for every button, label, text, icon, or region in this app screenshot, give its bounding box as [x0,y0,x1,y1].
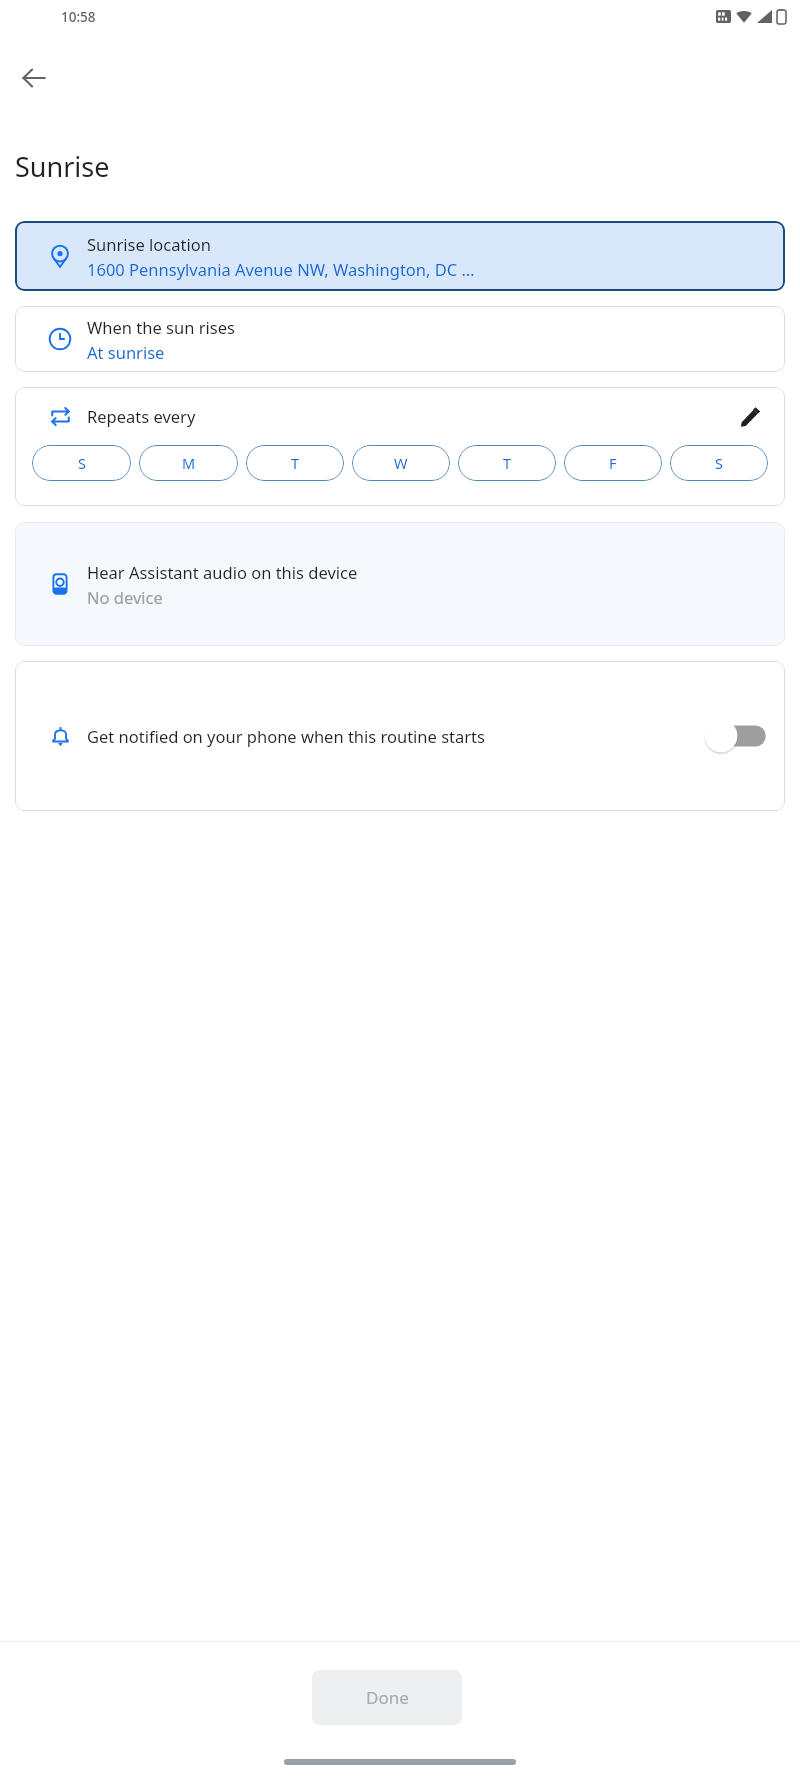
staticText: 10:58 [61,8,96,26]
staticText: When the sun rises [87,316,235,338]
button[interactable]: Sunrise location [15,221,785,291]
staticText: No device [87,586,163,608]
button[interactable]: Hear Assistant audio on this device [15,522,785,646]
staticText: Repeats every [87,405,733,427]
staticText: At sunrise [87,341,165,363]
button[interactable]: T [458,445,556,481]
staticText: S [715,453,723,473]
staticText: Hear Assistant audio on this device [87,561,358,583]
staticText: Sunrise [15,148,110,185]
staticText: S [78,453,86,473]
staticText: 1600 Pennsylvania Avenue NW, Washington,… [87,258,785,280]
staticText: Done [366,1686,409,1709]
staticText: M [182,453,196,473]
button[interactable]: S [670,445,768,481]
button[interactable]: F [564,445,662,481]
button[interactable]: Notification toggle, off [705,719,767,753]
staticText: W [394,453,408,473]
button[interactable]: Back [8,52,60,104]
staticText: T [503,453,512,473]
button[interactable]: W [352,445,450,481]
button[interactable]: When the sun rises [15,306,785,372]
button[interactable]: S [32,445,131,481]
staticText: T [291,453,300,473]
staticText: Get notified on your phone when this rou… [87,725,687,747]
staticText: F [609,453,617,473]
button[interactable]: Done [312,1670,462,1725]
staticText: Sunrise location [87,233,211,255]
button[interactable]: M [139,445,238,481]
button[interactable]: Get notified on your phone when this rou… [15,661,785,811]
button[interactable]: Edit repeat schedule [733,398,769,434]
button[interactable]: T [246,445,344,481]
